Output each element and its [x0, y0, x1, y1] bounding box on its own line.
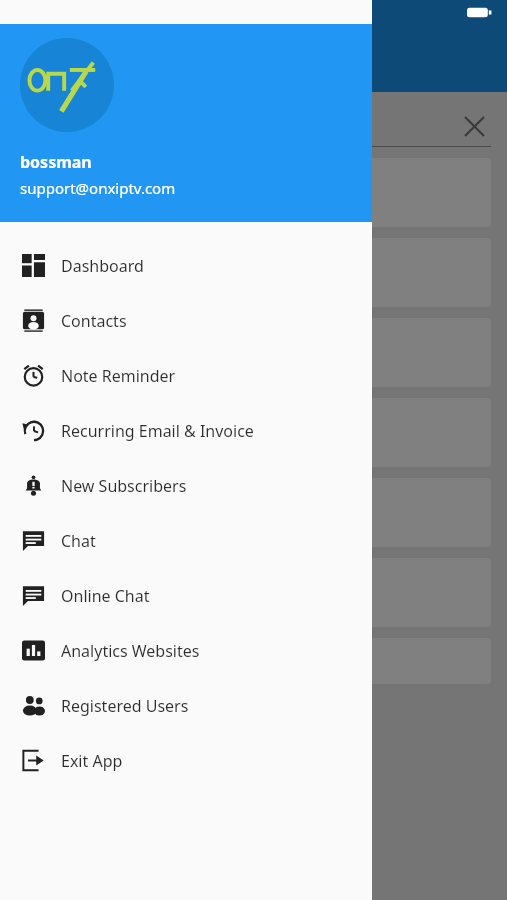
staticText: support@onxiptv.com: [20, 178, 176, 198]
button[interactable]: Note Reminder: [0, 348, 372, 403]
staticText: NEW SUB: [222, 407, 285, 426]
button[interactable]: OPENED: [16, 238, 491, 307]
button[interactable]: Online Chat: [0, 568, 372, 623]
staticText: Online Chat: [61, 585, 150, 607]
button[interactable]: Dashboard: [0, 238, 372, 293]
staticText: New Subscribers: [61, 475, 187, 497]
button[interactable]: SCHEDULE EMAIL: [16, 158, 491, 227]
button[interactable]: NEW OPTINS: [16, 478, 491, 547]
button[interactable]: Pending Invoice: [16, 558, 491, 627]
staticText: bossman: [20, 151, 92, 173]
staticText: Analytics Websites: [61, 640, 200, 662]
staticText: Recurring Email & Invoice: [61, 420, 254, 442]
button[interactable]: New Subscribers: [0, 458, 372, 513]
button[interactable]: CANCELLED: [16, 318, 491, 387]
staticText: Chat: [61, 530, 96, 552]
button[interactable]: NEW SUB: [16, 398, 491, 467]
button[interactable]: Recurring Email & Invoice: [0, 403, 372, 458]
staticText: (7%): [234, 432, 273, 458]
staticText: Contacts: [61, 310, 127, 332]
staticText: 05: [16, 113, 39, 140]
staticText: Registered Users: [61, 695, 189, 717]
button[interactable]: Contacts: [0, 293, 372, 348]
staticText: Note Reminder: [61, 365, 176, 387]
button[interactable]: [16, 638, 491, 684]
staticText: Exit App: [61, 750, 123, 772]
button[interactable]: Chat: [0, 513, 372, 568]
staticText: Dashboard: [61, 255, 144, 277]
button[interactable]: Registered Users: [0, 678, 372, 733]
button[interactable]: Exit App: [0, 733, 372, 788]
button[interactable]: Clear: [457, 109, 491, 143]
button[interactable]: Analytics Websites: [0, 623, 372, 678]
